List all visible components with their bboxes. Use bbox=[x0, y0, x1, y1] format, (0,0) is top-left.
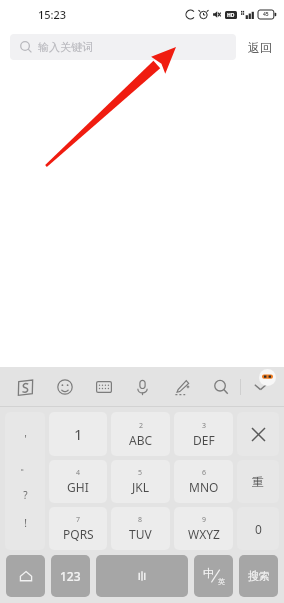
staticText: 重 bbox=[252, 474, 264, 489]
staticText: 输入关键词 bbox=[38, 40, 93, 54]
staticText: 8 bbox=[138, 515, 143, 525]
staticText: 6 bbox=[202, 468, 207, 478]
staticText: ? bbox=[23, 488, 28, 502]
staticText: ABC bbox=[129, 432, 153, 448]
button[interactable]: Emoji bbox=[45, 367, 84, 407]
staticText: GHI bbox=[67, 479, 89, 495]
button[interactable]: Handwriting bbox=[162, 367, 201, 407]
button[interactable]: Keyboard layout bbox=[84, 367, 123, 407]
staticText: 7 bbox=[76, 515, 81, 525]
staticText: 45 bbox=[263, 11, 269, 18]
button[interactable]: ' bbox=[5, 412, 45, 550]
button[interactable]: 输入关键词 bbox=[10, 34, 236, 60]
button[interactable]: 4 bbox=[49, 460, 107, 503]
staticText: WXYZ bbox=[188, 526, 220, 542]
staticText: ! bbox=[24, 516, 27, 530]
button[interactable]: Sogou input bbox=[6, 367, 45, 407]
button[interactable]: 1 bbox=[49, 412, 107, 456]
button[interactable]: 9 bbox=[174, 507, 233, 550]
staticText: 123 bbox=[60, 568, 81, 584]
button[interactable]: 2 bbox=[111, 412, 170, 456]
button[interactable]: 返回 bbox=[236, 36, 274, 59]
button[interactable]: 5 bbox=[111, 460, 170, 503]
staticText: 5 bbox=[138, 468, 143, 478]
button[interactable]: 0 bbox=[237, 507, 279, 550]
staticText: 1 bbox=[74, 424, 83, 444]
staticText: JKL bbox=[132, 479, 149, 495]
staticText: 中 bbox=[203, 566, 214, 580]
staticText: 9 bbox=[202, 515, 207, 525]
staticText: 15:23 bbox=[38, 7, 67, 22]
button[interactable]: Numbers bbox=[51, 555, 90, 597]
button[interactable]: Hide keyboard bbox=[241, 367, 280, 407]
button[interactable]: 7 bbox=[49, 507, 107, 550]
staticText: 。 bbox=[20, 460, 30, 473]
button[interactable]: Space bbox=[96, 555, 188, 597]
staticText: HD bbox=[227, 12, 235, 19]
staticText: ' bbox=[24, 432, 27, 446]
staticText: 4 bbox=[76, 468, 81, 478]
button[interactable]: Search bbox=[239, 555, 278, 597]
button[interactable]: 重 bbox=[237, 460, 279, 503]
staticText: 0 bbox=[255, 521, 262, 537]
staticText: 搜索 bbox=[248, 569, 270, 583]
staticText: DEF bbox=[193, 432, 215, 448]
staticText: 2 bbox=[139, 421, 144, 431]
button[interactable]: Voice input bbox=[123, 367, 162, 407]
staticText: 英 bbox=[218, 577, 225, 586]
staticText: PQRS bbox=[63, 526, 94, 542]
staticText: MNO bbox=[189, 479, 219, 495]
button[interactable]: Delete bbox=[237, 412, 279, 456]
staticText: 3 bbox=[202, 421, 207, 431]
staticText: TUV bbox=[129, 526, 152, 542]
button[interactable]: 6 bbox=[174, 460, 233, 503]
button[interactable]: Home bbox=[6, 555, 45, 597]
button[interactable]: Sogou badge bbox=[259, 369, 276, 386]
staticText: 返回 bbox=[248, 40, 272, 55]
button[interactable]: 8 bbox=[111, 507, 170, 550]
button[interactable]: Search bbox=[201, 367, 240, 407]
button[interactable]: Chinese English toggle bbox=[194, 555, 233, 597]
button[interactable]: 3 bbox=[174, 412, 233, 456]
